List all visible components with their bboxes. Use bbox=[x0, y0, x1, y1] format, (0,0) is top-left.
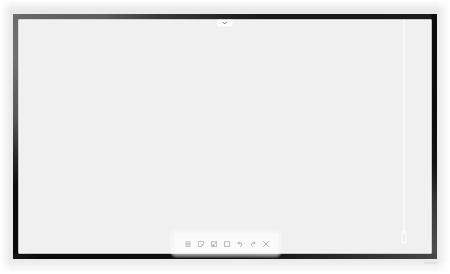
button[interactable]: Menu bbox=[181, 235, 194, 253]
button[interactable]: Note bbox=[194, 235, 207, 253]
button[interactable]: Undo bbox=[233, 235, 246, 253]
button[interactable]: Close bbox=[259, 235, 272, 253]
button[interactable]: Shape bbox=[220, 235, 233, 253]
button[interactable]: Insert image bbox=[207, 235, 220, 253]
button[interactable]: Redo bbox=[246, 235, 259, 253]
